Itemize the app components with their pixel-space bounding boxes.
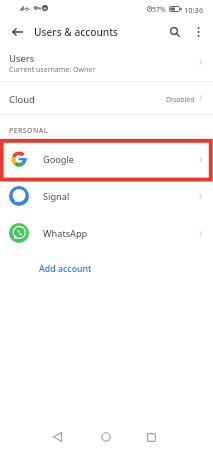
staticText: PERSONAL [9, 126, 48, 136]
staticText: Signal [43, 190, 70, 203]
button[interactable]: Signal [0, 178, 213, 215]
button[interactable]: Recents [139, 425, 163, 449]
staticText: Google [43, 153, 75, 166]
button[interactable]: Users [0, 46, 213, 81]
button[interactable]: Add account [36, 259, 95, 279]
button[interactable]: More options [187, 21, 209, 43]
button[interactable]: WhatsApp [0, 215, 213, 252]
button[interactable]: Home [94, 425, 118, 449]
button[interactable]: Search [163, 20, 187, 44]
staticText: Users & accounts [34, 25, 119, 39]
button[interactable]: Back [45, 425, 69, 449]
staticText: Cloud [9, 93, 35, 106]
button[interactable]: Cloud [0, 82, 213, 114]
staticText: Users [9, 52, 35, 65]
staticText: Disabled [166, 95, 195, 105]
staticText: Add account [39, 263, 92, 275]
staticText: 57% [152, 5, 166, 15]
button[interactable]: Back [5, 20, 29, 44]
staticText: WhatsApp [43, 227, 88, 240]
button[interactable]: Google [0, 141, 213, 178]
staticText: 10:36 [184, 5, 204, 15]
staticText: Current username: Owner [9, 65, 96, 75]
